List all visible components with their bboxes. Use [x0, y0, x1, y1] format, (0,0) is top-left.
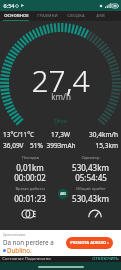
staticText: ОСНОВНОЕ — [4, 13, 29, 19]
button[interactable]: Headlight — [22, 208, 36, 220]
staticText: 3993mAh — [46, 141, 76, 150]
staticText: 36,09V — [3, 141, 24, 150]
staticText: 15,3km — [95, 141, 118, 150]
button[interactable]: Speedometer — [88, 208, 102, 220]
button[interactable]: ARB — [89, 11, 112, 21]
staticText: 51% — [30, 141, 43, 150]
staticText: ГРАФИКИ — [37, 13, 58, 19]
staticText: ABS — [60, 192, 66, 196]
staticText: 13°C/11°C — [3, 130, 35, 139]
button[interactable]: ОСНОВНОЕ — [0, 11, 32, 21]
staticText: 30,4km/h — [89, 130, 118, 139]
staticText: PRENOTA ADESSO › — [70, 240, 109, 246]
staticText: 530,43km — [72, 162, 109, 173]
button[interactable]: PRENOTA ADESSO › — [66, 237, 113, 249]
staticText: Sponsorizzato — [3, 232, 26, 237]
staticText: 6:54 — [3, 2, 15, 10]
staticText: 05:54:45 — [75, 172, 107, 183]
staticText: 00:00:02 — [14, 172, 46, 183]
button[interactable]: СВОДКА — [62, 11, 89, 21]
staticText: km/h — [51, 91, 71, 102]
staticText: Поездка — [22, 155, 39, 161]
staticText: Состояние Подключено — [2, 256, 51, 262]
staticText: 17,3W — [51, 130, 70, 139]
staticText: СВОДКА — [67, 13, 85, 19]
staticText: 0,01km — [16, 162, 44, 173]
staticText: 27,4 — [31, 60, 90, 101]
staticText: ОТКЛЮЧИТЬ — [92, 256, 119, 262]
button[interactable]: ГРАФИКИ — [32, 11, 62, 21]
button[interactable]: ОТКЛЮЧИТЬ — [92, 256, 119, 262]
staticText: Общий пробег — [76, 186, 106, 192]
staticText: 00:01:23 — [14, 193, 46, 204]
staticText: 530,43km — [72, 193, 109, 204]
staticText: Da non perdere a — [3, 238, 54, 246]
staticText: Dublino. — [7, 246, 32, 254]
staticText: ARB — [96, 13, 105, 19]
staticText: Одометр — [81, 155, 100, 161]
staticText: Drive — [54, 118, 67, 125]
staticText: Время работы — [15, 186, 45, 192]
